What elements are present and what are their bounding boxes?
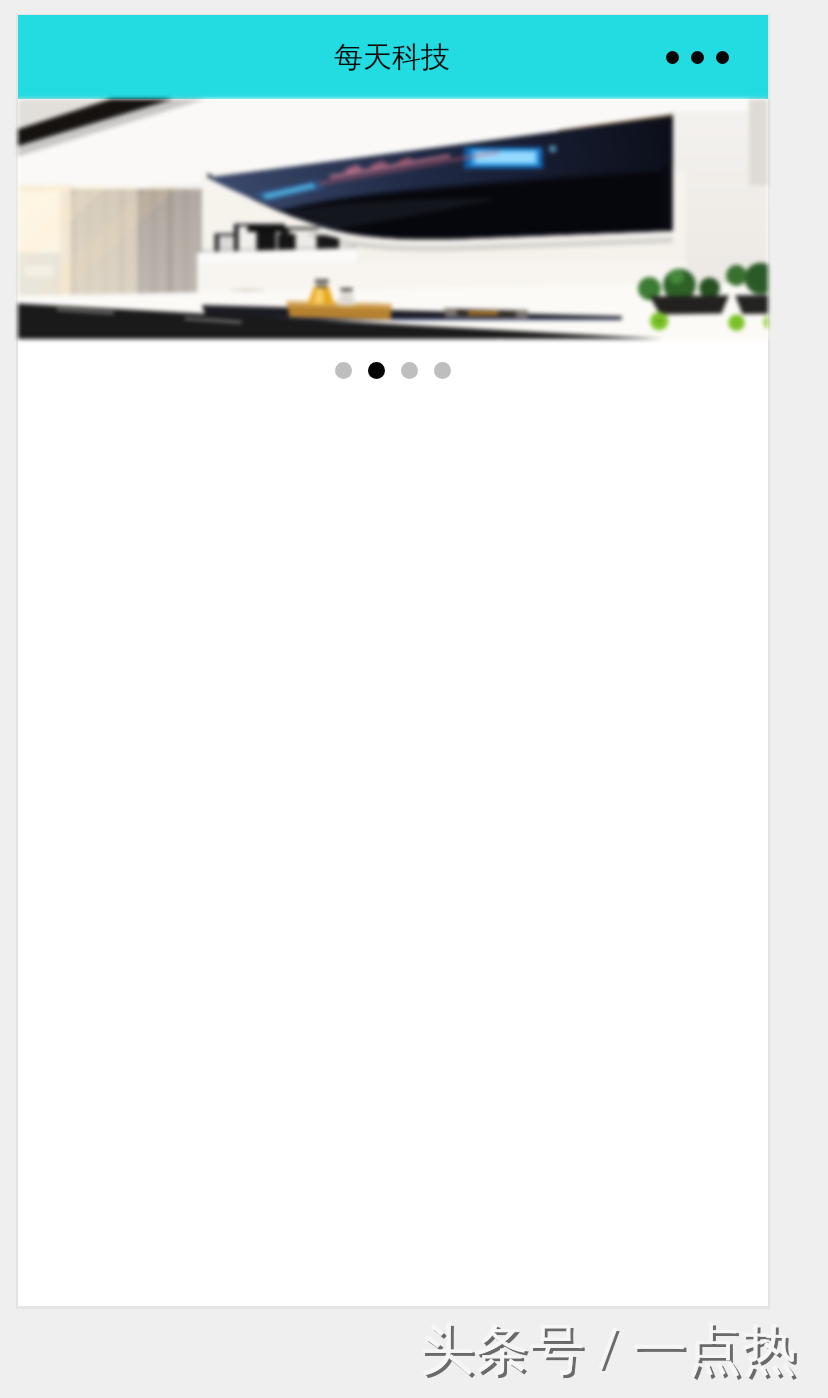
button[interactable] xyxy=(401,362,418,379)
staticText: 头条号 / 一点热 xyxy=(422,1312,800,1387)
button[interactable]: More options xyxy=(654,43,741,72)
staticText: 每天科技 xyxy=(334,39,450,76)
button[interactable] xyxy=(434,362,451,379)
button[interactable] xyxy=(368,362,385,379)
button[interactable] xyxy=(335,362,352,379)
staticText: 头条号 / 一点热 xyxy=(419,1309,797,1384)
button[interactable] xyxy=(18,99,768,339)
